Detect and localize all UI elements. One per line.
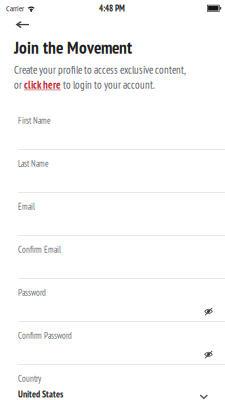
staticText: 4:48 PM: [99, 3, 125, 14]
button[interactable]: Confirm Password: [0, 322, 225, 365]
button[interactable]: First Name: [0, 107, 225, 150]
staticText: Confirm Email: [18, 244, 61, 255]
button[interactable]: Back: [14, 15, 52, 35]
staticText: Carrier: [6, 3, 24, 13]
staticText: click here: [24, 78, 61, 92]
staticText: Join the Movement: [14, 36, 132, 58]
staticText: First Name: [18, 115, 51, 126]
button[interactable]: click here: [24, 78, 61, 92]
button[interactable]: Last Name: [0, 150, 225, 193]
staticText: Country: [18, 373, 41, 384]
button[interactable]: Password: [0, 279, 225, 322]
staticText: or: [14, 78, 24, 92]
staticText: Confirm Password: [18, 330, 72, 341]
staticText: Last Name: [18, 158, 49, 169]
button[interactable]: Country: [0, 365, 225, 400]
staticText: United States: [18, 388, 63, 400]
staticText: Create your profile to access exclusive …: [14, 63, 186, 77]
staticText: Email: [18, 201, 35, 212]
staticText: Password: [18, 287, 46, 298]
staticText: to login to your account.: [61, 78, 155, 92]
button[interactable]: Email: [0, 193, 225, 236]
button[interactable]: Confirm Email: [0, 236, 225, 279]
